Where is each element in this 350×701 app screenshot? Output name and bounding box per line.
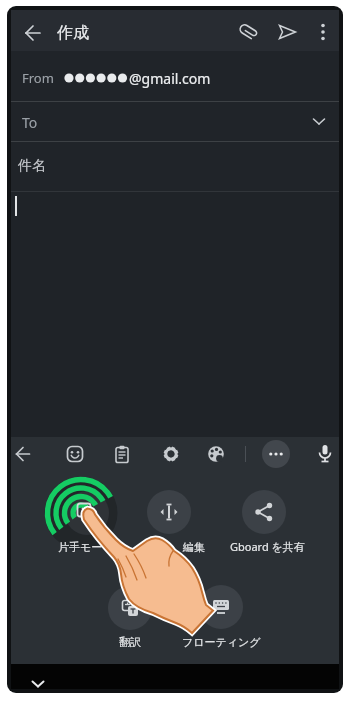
button[interactable] [11,51,339,101]
button[interactable] [199,585,243,629]
staticText: Gboard を共有 [230,539,305,554]
button[interactable] [161,444,181,464]
staticText: From [22,69,54,87]
staticText: 片手モード [58,540,114,554]
button[interactable]: Gboard を共有 [222,536,312,557]
button[interactable] [112,444,132,464]
button[interactable] [13,444,33,464]
staticText: 件名 [18,157,46,175]
button[interactable] [28,677,48,691]
button[interactable] [11,142,339,191]
button[interactable] [147,490,191,534]
staticText: 翻訳 [119,635,141,649]
button[interactable]: フローティング [176,631,266,652]
button[interactable] [242,490,286,534]
button[interactable] [237,20,261,44]
button[interactable] [262,440,290,468]
button[interactable] [11,102,339,141]
button[interactable] [206,444,226,464]
staticText: To [22,113,38,132]
staticText: 編集 [183,540,205,554]
button[interactable] [65,444,85,464]
button[interactable]: 翻訳 [110,631,150,652]
staticText: 作成 [57,23,89,43]
staticText: @gmail.com [129,69,211,88]
button[interactable] [309,111,329,131]
button[interactable] [11,192,339,437]
button[interactable]: 片手モード [53,536,119,557]
button[interactable] [275,20,299,44]
button[interactable]: 編集 [183,536,223,557]
button[interactable] [23,23,43,43]
staticText: フローティング [182,635,261,649]
button[interactable] [315,443,335,465]
button[interactable] [108,586,152,630]
button[interactable] [65,491,109,535]
button[interactable] [315,20,331,44]
